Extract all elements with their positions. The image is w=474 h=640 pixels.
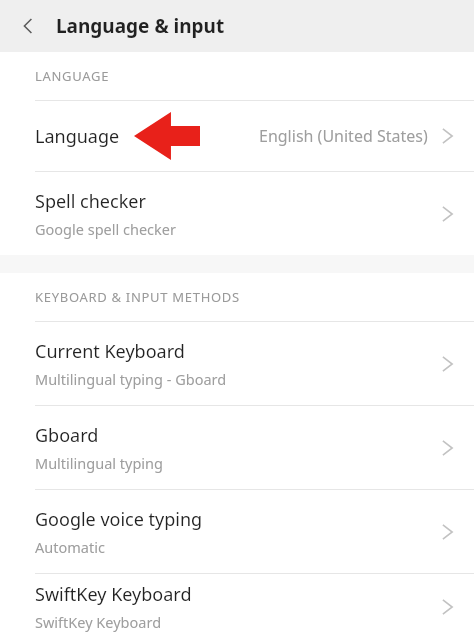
staticText: Multilingual typing - Gboard <box>35 369 227 389</box>
staticText: Current Keyboard <box>35 339 185 364</box>
button[interactable]: Back <box>12 10 44 42</box>
staticText: Language <box>35 124 120 149</box>
staticText: Automatic <box>35 537 105 557</box>
staticText: Google voice typing <box>35 507 203 532</box>
button[interactable]: Spell checker <box>0 172 474 255</box>
staticText: Multilingual typing <box>35 453 163 473</box>
staticText: LANGUAGE <box>35 67 110 85</box>
button[interactable]: Language <box>0 101 474 171</box>
staticText: Gboard <box>35 423 99 448</box>
button[interactable]: Gboard <box>0 406 474 489</box>
staticText: English (United States) <box>259 125 428 147</box>
staticText: Google spell checker <box>35 219 176 239</box>
staticText: Language & input <box>56 13 225 39</box>
button[interactable]: Current Keyboard <box>0 322 474 405</box>
staticText: Spell checker <box>35 189 146 214</box>
staticText: SwiftKey Keyboard <box>35 582 192 607</box>
button[interactable]: Google voice typing <box>0 490 474 573</box>
staticText: KEYBOARD & INPUT METHODS <box>35 288 240 306</box>
button[interactable]: SwiftKey Keyboard <box>0 574 474 640</box>
staticText: SwiftKey Keyboard <box>35 612 162 632</box>
